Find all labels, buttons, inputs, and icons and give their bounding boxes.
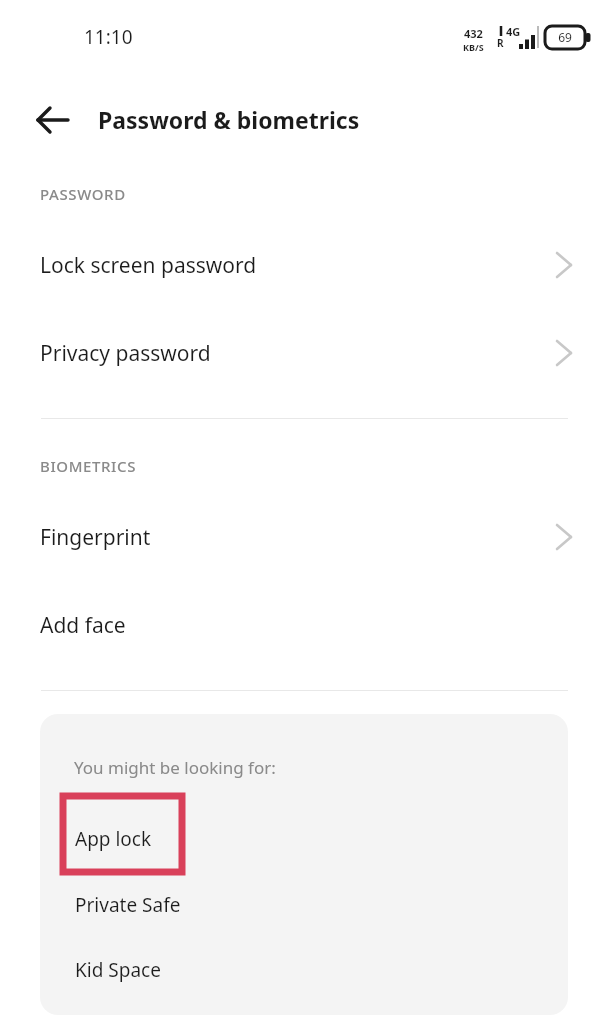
staticText: PASSWORD (40, 184, 126, 204)
staticText: BIOMETRICS (40, 456, 137, 476)
staticText: Lock screen password (40, 251, 257, 280)
button[interactable]: Private Safe (40, 886, 568, 924)
button[interactable]: Back (33, 99, 77, 141)
button[interactable]: Kid Space (40, 951, 568, 989)
staticText: 69 (542, 29, 588, 45)
staticText: Privacy password (40, 339, 211, 368)
button[interactable]: Lock screen password (0, 232, 609, 298)
staticText: R (497, 36, 504, 50)
staticText: Private Safe (75, 892, 181, 918)
staticText: Fingerprint (40, 523, 151, 552)
button[interactable]: Add face (0, 592, 609, 658)
staticText: KB/S (463, 41, 484, 53)
button[interactable]: Fingerprint (0, 504, 609, 570)
staticText: Password & biometrics (98, 104, 360, 135)
staticText: 11:10 (84, 24, 133, 50)
staticText: Kid Space (75, 957, 161, 983)
staticText: App lock (75, 826, 152, 852)
staticText: Add face (40, 611, 126, 640)
button[interactable]: Privacy password (0, 320, 609, 386)
staticText: 432 (464, 26, 483, 41)
staticText: 4G (506, 24, 521, 39)
button[interactable]: App lock (40, 820, 568, 858)
staticText: You might be looking for: (74, 756, 276, 779)
